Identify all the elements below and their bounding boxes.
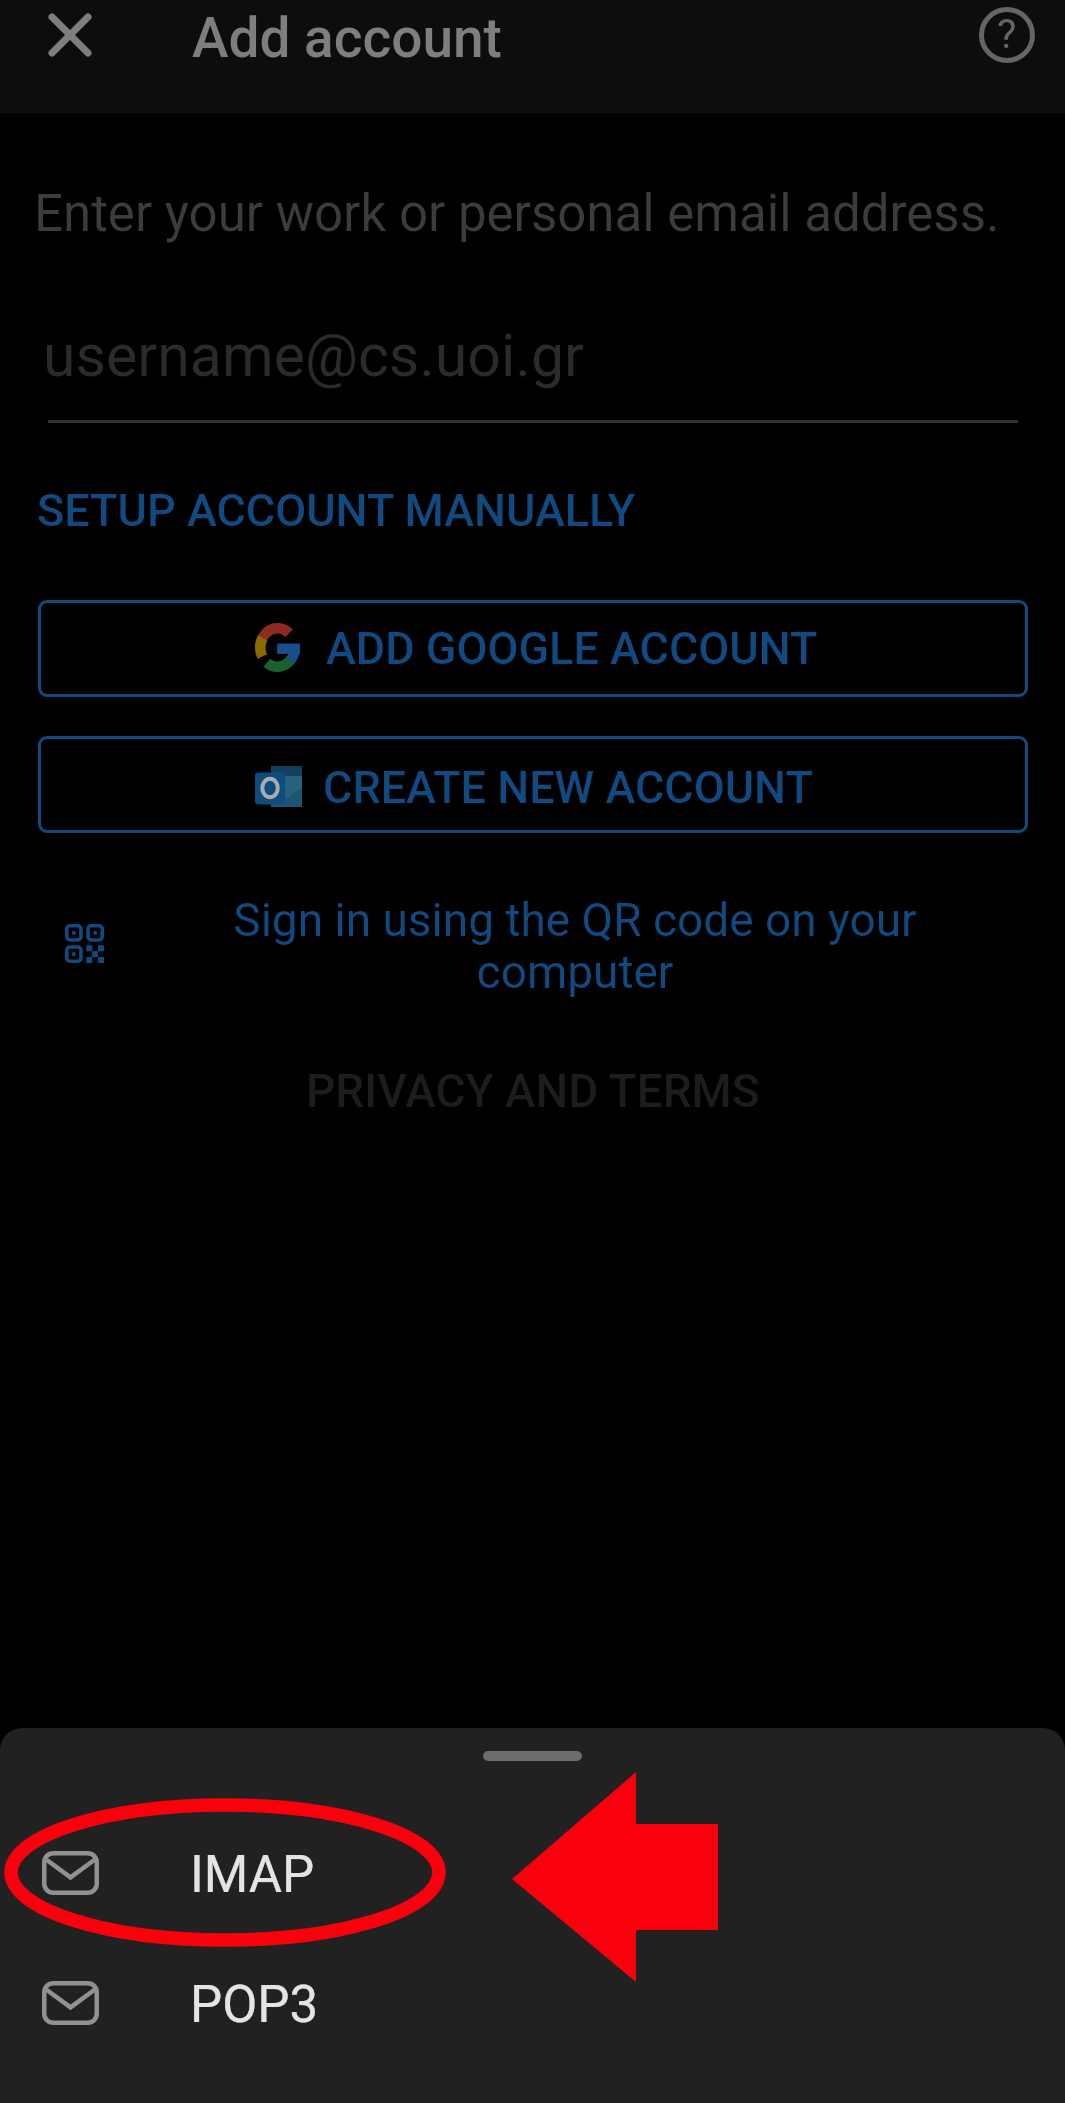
staticText: ?	[997, 10, 1017, 58]
staticText: username@cs.uoi.gr	[43, 321, 585, 390]
staticText: SETUP ACCOUNT MANUALLY	[37, 484, 636, 537]
staticText: POP3	[190, 1975, 319, 2035]
button[interactable]: Help	[957, 0, 1057, 85]
staticText: PRIVACY AND TERMS	[306, 1064, 760, 1118]
staticText: CREATE NEW ACCOUNT	[323, 761, 813, 814]
staticText: Sign in using the QR code on your comput…	[230, 893, 920, 999]
button[interactable]: CREATE NEW ACCOUNT	[38, 736, 1028, 833]
staticText: ADD GOOGLE ACCOUNT	[326, 622, 818, 675]
button[interactable]: POP3	[0, 1938, 1065, 2068]
button[interactable]: ADD GOOGLE ACCOUNT	[38, 600, 1028, 697]
button[interactable]: SETUP ACCOUNT MANUALLY	[19, 466, 654, 555]
button[interactable]: Close	[20, 0, 120, 85]
staticText: IMAP	[190, 1845, 315, 1905]
button[interactable]: PRIVACY AND TERMS	[288, 1046, 778, 1136]
staticText: Enter your work or personal email addres…	[34, 184, 1000, 244]
button[interactable]: IMAP	[0, 1808, 1065, 1938]
button[interactable]: username@cs.uoi.gr	[48, 300, 1018, 423]
button[interactable]: Sign in using the QR code on your comput…	[0, 870, 1065, 1020]
staticText: Add account	[192, 6, 502, 70]
